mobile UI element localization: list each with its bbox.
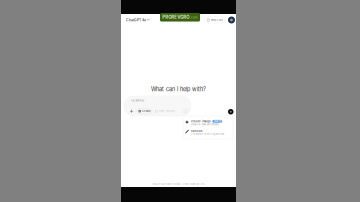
staticText: Search	[142, 110, 150, 113]
button[interactable]: Account	[225, 16, 235, 23]
staticText: .com	[190, 15, 198, 19]
staticText: Visualize ideas and concepts	[191, 123, 219, 126]
button[interactable]: More	[183, 108, 189, 114]
staticText: What can I help with?	[151, 86, 206, 93]
staticText: Ask anything	[130, 99, 144, 102]
button[interactable]: Temporary	[205, 17, 225, 23]
staticText: Deep research	[159, 110, 175, 113]
button[interactable]: Search	[137, 108, 152, 114]
staticText: ChatGPT can make mistakes. Check importa…	[151, 183, 205, 185]
button[interactable]: Canvas	[183, 127, 233, 137]
staticText: Canvas	[191, 129, 202, 132]
staticText: ChatGPT 4o	[126, 18, 146, 22]
staticText: PROREVGRO	[162, 15, 189, 20]
button[interactable]: ChatGPT 4o	[125, 16, 151, 24]
staticText: Create image	[191, 120, 211, 123]
staticText: Updated	[214, 120, 221, 122]
button[interactable]: Create image	[183, 118, 233, 127]
button[interactable]: Deep research	[155, 110, 175, 113]
button[interactable]: Attach	[130, 110, 133, 113]
staticText: Temporary	[211, 18, 223, 22]
staticText: Collaborate on writing and code	[191, 133, 224, 135]
